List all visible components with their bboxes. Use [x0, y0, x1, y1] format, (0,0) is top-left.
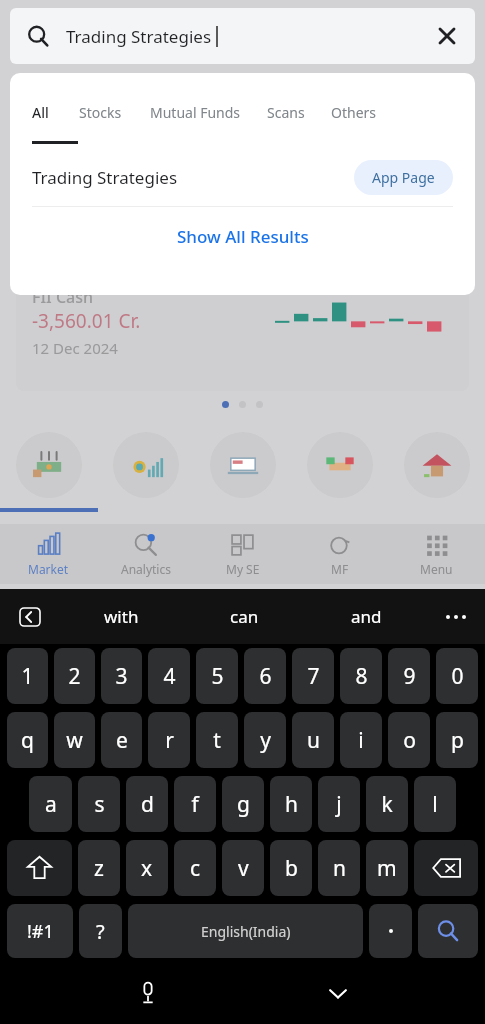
staticText: 1 — [21, 662, 34, 691]
button[interactable]: Trading Strategies — [10, 148, 475, 206]
button[interactable]: 7 — [292, 648, 334, 704]
staticText: 8 — [355, 662, 368, 691]
staticText: h — [285, 790, 298, 819]
button[interactable]: y — [244, 712, 286, 768]
staticText: Trading Strategies — [32, 166, 178, 189]
staticText: d — [141, 790, 154, 819]
staticText: 6 — [259, 662, 272, 691]
staticText: Scans — [267, 103, 305, 122]
button[interactable]: ? — [79, 904, 122, 958]
button[interactable] — [404, 432, 470, 498]
button[interactable]: n — [318, 840, 360, 896]
staticText: j — [336, 790, 342, 819]
button[interactable]: h — [270, 776, 312, 832]
button[interactable]: z — [78, 840, 120, 896]
staticText: t — [213, 726, 221, 755]
staticText: Analytics — [121, 561, 171, 577]
staticText: 2 — [68, 662, 81, 691]
button[interactable]: Scans — [267, 103, 305, 122]
button[interactable]: c — [174, 840, 216, 896]
button[interactable]: q — [7, 712, 48, 768]
button[interactable]: Market — [0, 524, 97, 584]
button[interactable]: e — [101, 712, 142, 768]
button[interactable]: 5 — [196, 648, 238, 704]
button[interactable]: i — [340, 712, 382, 768]
button[interactable]: j — [318, 776, 360, 832]
staticText: 0 — [451, 662, 464, 691]
button[interactable]: p — [436, 712, 478, 768]
staticText: k — [381, 790, 393, 819]
staticText: l — [432, 790, 438, 819]
button[interactable]: English(India) — [128, 904, 363, 958]
button[interactable]: App Page — [354, 160, 453, 195]
button[interactable]: a — [29, 776, 72, 832]
staticText: m — [377, 854, 397, 883]
button[interactable]: Clear search — [419, 8, 475, 64]
button[interactable]: k — [366, 776, 408, 832]
button[interactable]: o — [388, 712, 430, 768]
staticText: Menu — [420, 561, 453, 577]
button[interactable]: Hide keyboard — [324, 979, 352, 1007]
button[interactable]: can — [183, 589, 305, 644]
button[interactable]: !#1 — [7, 904, 73, 958]
button[interactable]: Show All Results — [10, 207, 475, 265]
button[interactable]: 8 — [340, 648, 382, 704]
button[interactable]: 1 — [7, 648, 48, 704]
button[interactable]: Mutual Funds — [150, 103, 241, 122]
button[interactable]: All — [32, 103, 49, 122]
button[interactable]: More suggestions — [427, 589, 485, 644]
button[interactable]: Previous suggestions — [0, 589, 60, 644]
button[interactable]: Trading Strategies — [10, 8, 475, 64]
staticText: My SE — [226, 561, 260, 577]
staticText: c — [190, 854, 201, 883]
staticText: App Page — [372, 168, 435, 187]
button[interactable]: 2 — [54, 648, 95, 704]
button[interactable]: Period — [369, 904, 412, 958]
button[interactable]: My SE — [194, 524, 291, 584]
staticText: 4 — [163, 662, 176, 691]
button[interactable]: Menu — [388, 524, 485, 584]
staticText: !#1 — [27, 919, 54, 944]
button[interactable]: Analytics — [97, 524, 194, 584]
button[interactable]: MF — [291, 524, 388, 584]
button[interactable]: x — [126, 840, 168, 896]
button[interactable]: 6 — [244, 648, 286, 704]
staticText: Show All Results — [177, 225, 309, 248]
button[interactable]: with — [60, 589, 183, 644]
button[interactable]: l — [414, 776, 456, 832]
staticText: can — [230, 605, 259, 628]
button[interactable]: Voice input — [135, 980, 161, 1006]
button[interactable]: Stocks — [79, 103, 122, 122]
staticText: 9 — [403, 662, 416, 691]
button[interactable] — [16, 432, 82, 498]
button[interactable]: Shift — [7, 840, 72, 896]
button[interactable]: s — [78, 776, 120, 832]
staticText: p — [451, 726, 464, 755]
button[interactable]: g — [222, 776, 264, 832]
staticText: r — [165, 726, 174, 755]
button[interactable]: 0 — [436, 648, 478, 704]
staticText: z — [94, 854, 104, 883]
button[interactable]: and — [305, 589, 427, 644]
button[interactable]: v — [222, 840, 264, 896]
button[interactable]: 3 — [101, 648, 142, 704]
button[interactable]: r — [148, 712, 190, 768]
button[interactable]: Search — [418, 904, 478, 958]
button[interactable]: Backspace — [414, 840, 478, 896]
button[interactable]: u — [292, 712, 334, 768]
button[interactable]: 9 — [388, 648, 430, 704]
staticText: i — [358, 726, 364, 755]
button[interactable] — [113, 432, 179, 498]
button[interactable]: f — [174, 776, 216, 832]
button[interactable]: t — [196, 712, 238, 768]
button[interactable] — [210, 432, 276, 498]
button[interactable]: w — [54, 712, 95, 768]
button[interactable]: Others — [331, 103, 377, 122]
button[interactable]: 4 — [148, 648, 190, 704]
staticText: and — [351, 605, 382, 628]
button[interactable]: m — [366, 840, 408, 896]
button[interactable] — [307, 432, 373, 498]
button[interactable]: d — [126, 776, 168, 832]
staticText: q — [21, 726, 34, 755]
button[interactable]: b — [270, 840, 312, 896]
